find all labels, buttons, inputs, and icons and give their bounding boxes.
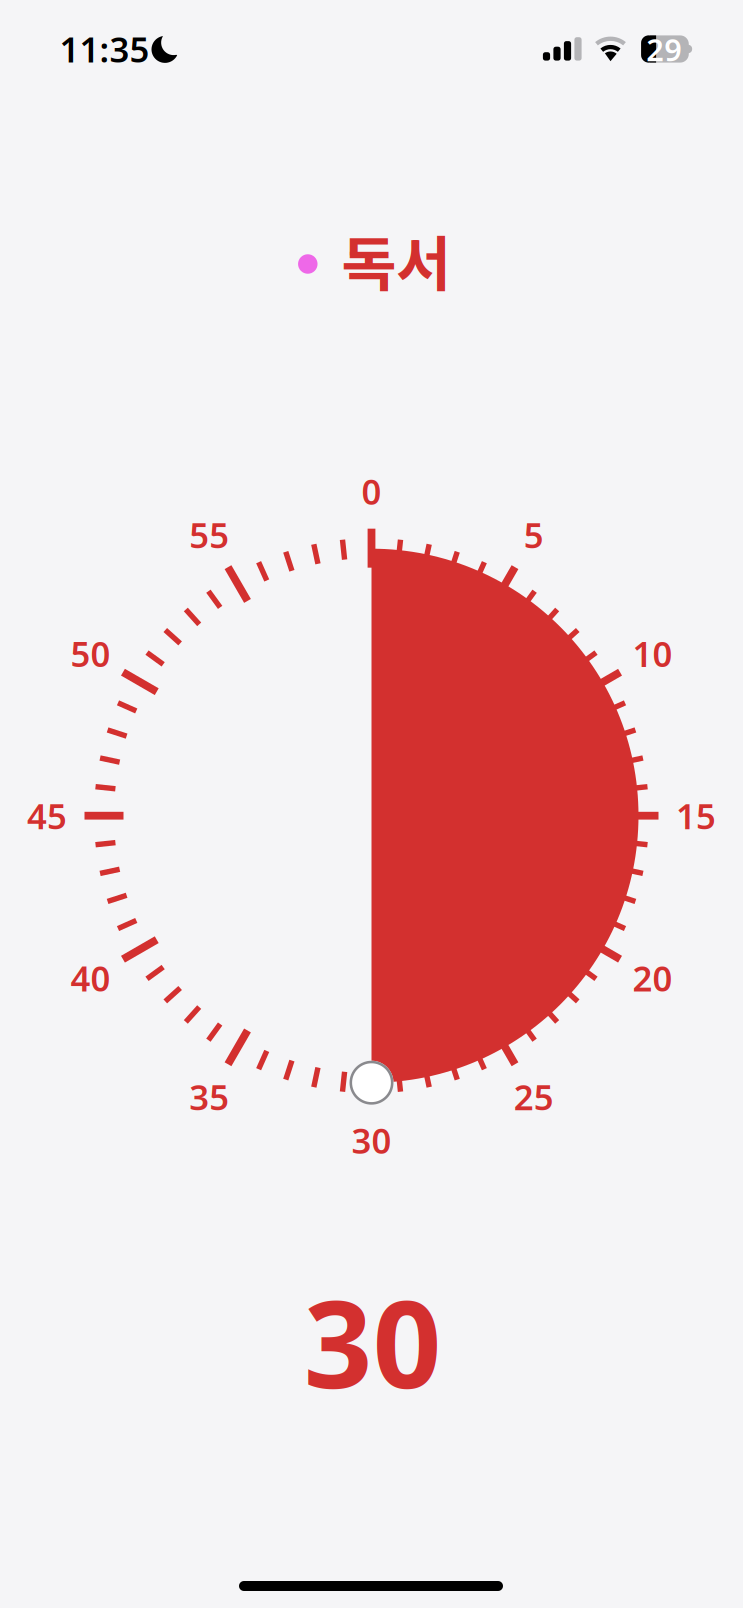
- staticText: 30: [304, 1262, 442, 1421]
- staticText: 0: [361, 468, 381, 514]
- staticText: 20: [632, 955, 672, 1001]
- staticText: 10: [632, 630, 672, 676]
- staticText: 11:35: [59, 26, 149, 72]
- button[interactable]: 독서: [266, 224, 476, 304]
- staticText: 독서: [341, 217, 451, 303]
- staticText: 30: [351, 1117, 391, 1163]
- staticText: 40: [70, 955, 110, 1001]
- staticText: 55: [189, 512, 229, 558]
- staticText: 25: [514, 1074, 554, 1120]
- staticText: 5: [524, 512, 544, 558]
- button[interactable]: 30 minutes remaining: [268, 1280, 478, 1404]
- staticText: 50: [70, 630, 110, 676]
- staticText: 29: [646, 29, 682, 70]
- staticText: 15: [676, 793, 716, 839]
- staticText: 35: [189, 1074, 229, 1120]
- staticText: 45: [27, 793, 67, 839]
- button[interactable]: Timer dial, 30 minutes: [21, 466, 721, 1166]
